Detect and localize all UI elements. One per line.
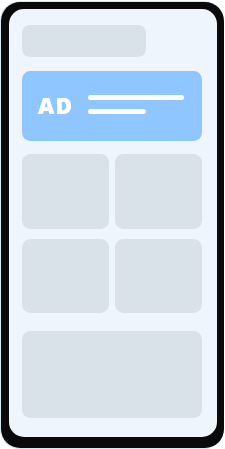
- button[interactable]: AD: [22, 71, 202, 141]
- staticText: AD: [38, 90, 74, 121]
